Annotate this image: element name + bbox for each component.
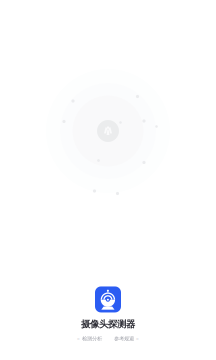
staticText: – 检测分析 参考规避 – (77, 335, 139, 342)
staticText: 摄像头探测器 (81, 318, 135, 330)
